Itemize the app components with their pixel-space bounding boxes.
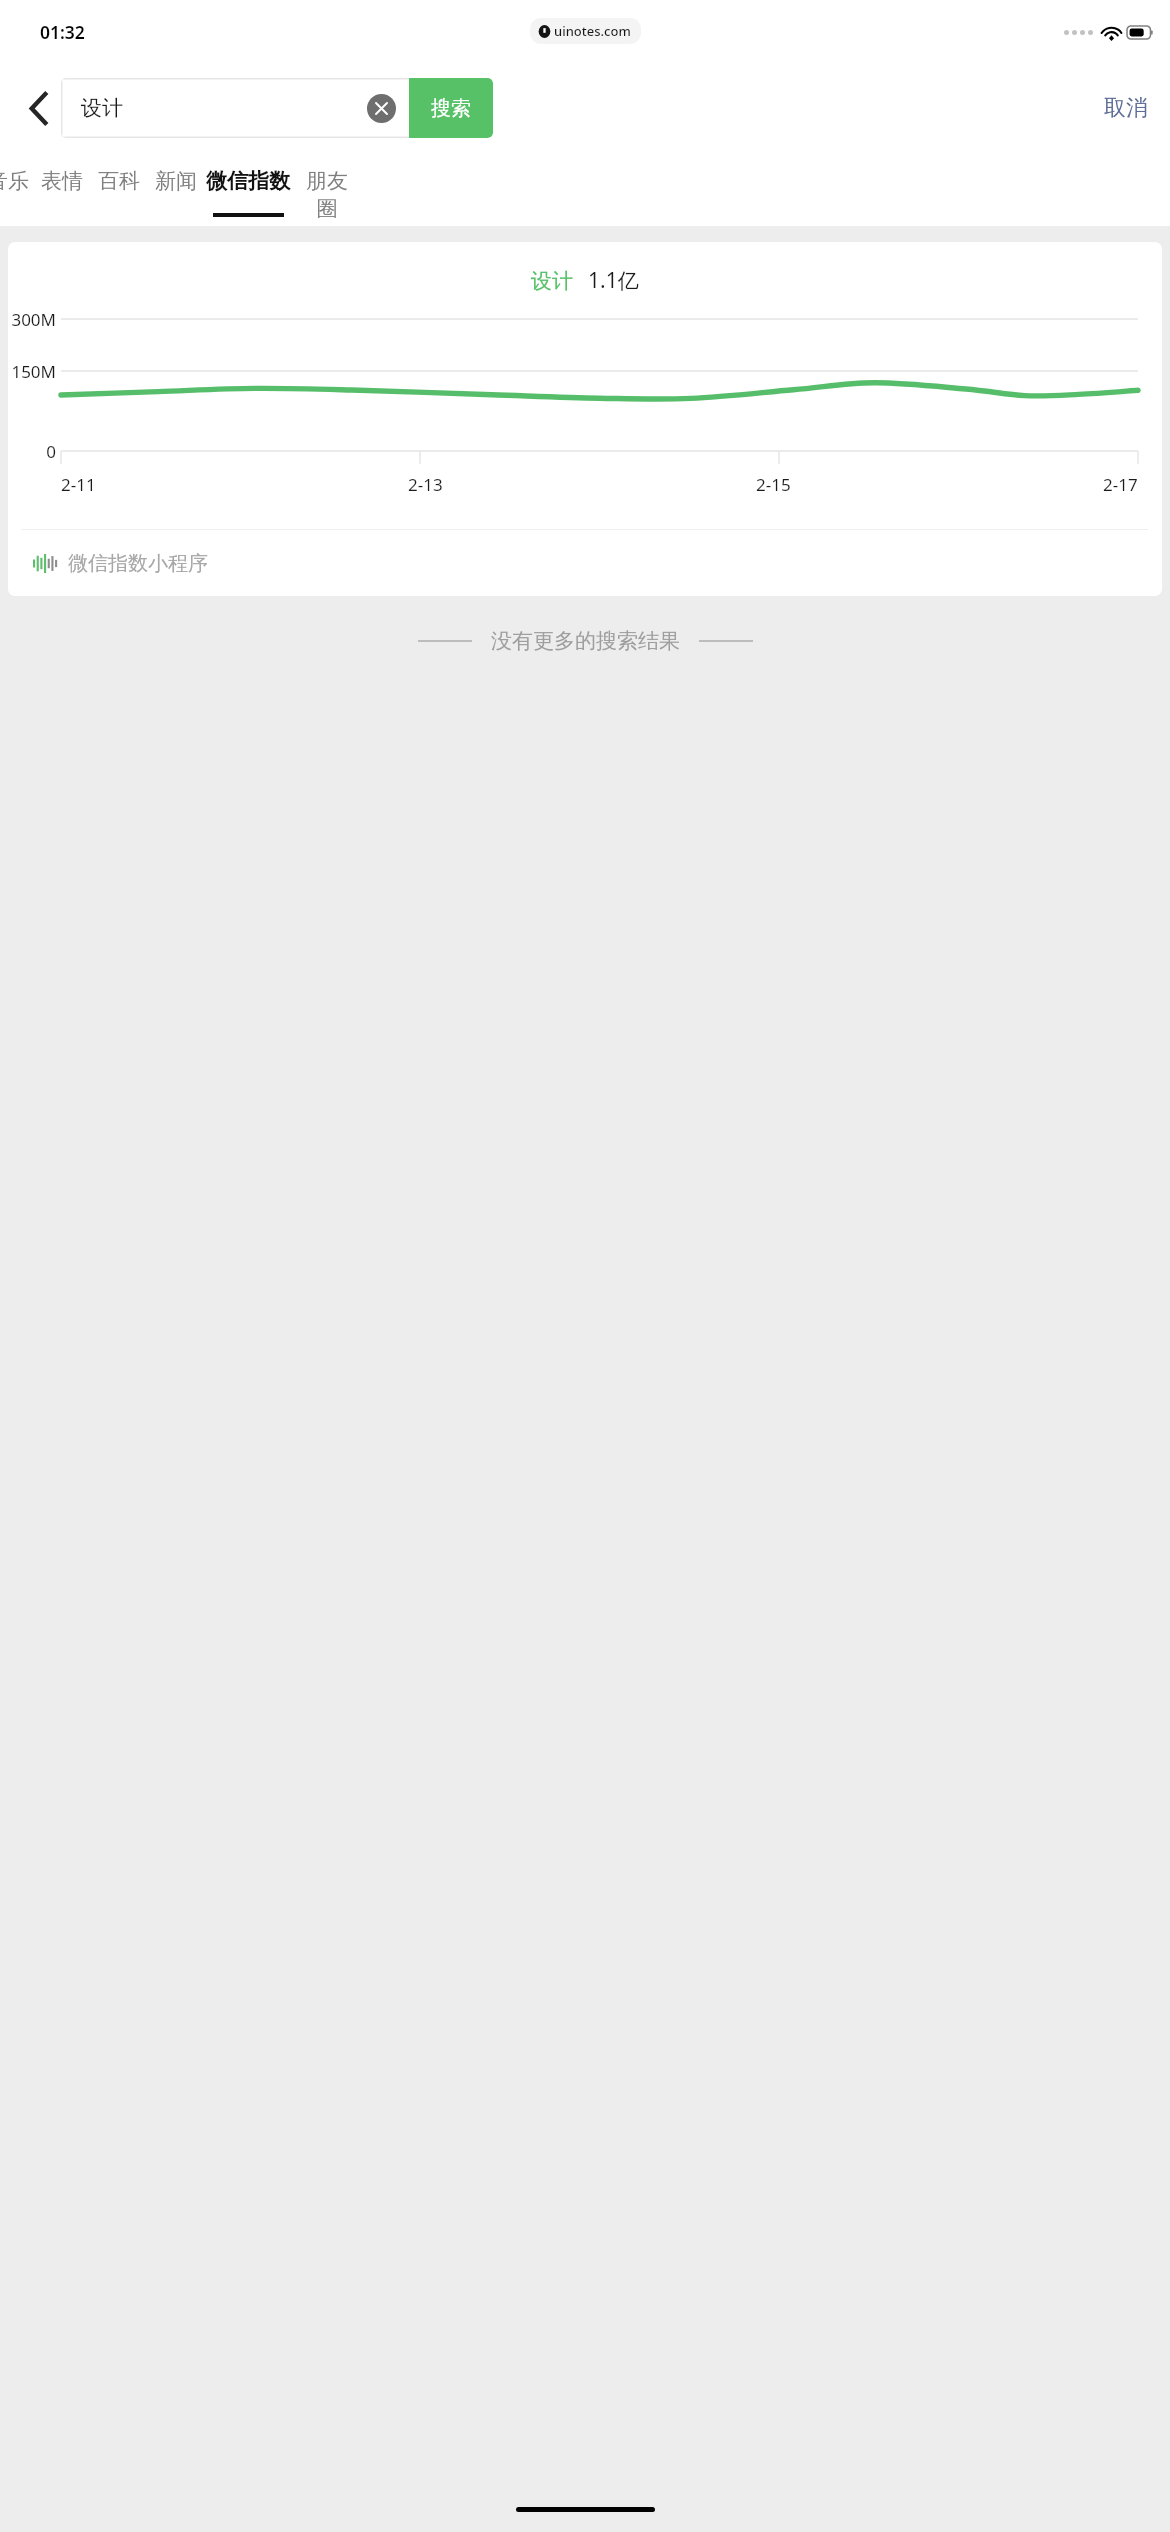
- staticText: 2-13: [408, 473, 443, 496]
- button[interactable]: Back: [12, 82, 64, 134]
- staticText: 2-15: [756, 473, 791, 496]
- staticText: 百科: [98, 168, 140, 194]
- staticText: 音乐: [0, 168, 29, 194]
- staticText: 设计: [531, 268, 573, 294]
- staticText: uinotes.com: [554, 22, 631, 40]
- staticText: 2-11: [61, 473, 96, 496]
- staticText: 1.1亿: [588, 266, 639, 295]
- staticText: 2-17: [1103, 473, 1138, 496]
- staticText: 微信指数小程序: [68, 551, 208, 576]
- staticText: 没有更多的搜索结果: [491, 628, 680, 654]
- staticText: 表情: [41, 168, 83, 194]
- staticText: 微信指数: [206, 168, 290, 194]
- button[interactable]: 朋友圈: [296, 155, 358, 226]
- staticText: 取消: [1104, 94, 1148, 122]
- button[interactable]: Clear search text: [367, 94, 396, 123]
- staticText: 搜索: [431, 96, 471, 121]
- staticText: 新闻: [155, 168, 197, 194]
- button[interactable]: 微信指数: [206, 155, 290, 226]
- button[interactable]: 新闻: [145, 155, 207, 226]
- button[interactable]: 设计: [8, 242, 1162, 596]
- button[interactable]: 表情: [31, 155, 93, 226]
- button[interactable]: 搜索: [409, 78, 493, 138]
- staticText: 150M: [11, 360, 56, 383]
- staticText: 0: [46, 440, 56, 463]
- button[interactable]: 音乐: [0, 155, 39, 226]
- staticText: 01:32: [40, 20, 85, 44]
- button[interactable]: 微信指数小程序: [8, 530, 1162, 596]
- staticText: 设计: [81, 95, 123, 121]
- button[interactable]: 取消: [1104, 94, 1148, 122]
- staticText: 朋友圈: [296, 168, 358, 222]
- button[interactable]: 设计: [61, 78, 409, 138]
- staticText: 300M: [11, 308, 56, 331]
- button[interactable]: 百科: [88, 155, 150, 226]
